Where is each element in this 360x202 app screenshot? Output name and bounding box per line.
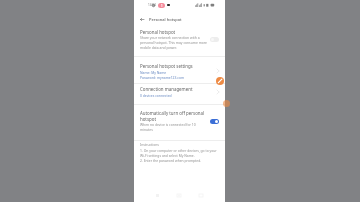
staticText: Instructions [140, 142, 159, 147]
staticText: 1 [161, 4, 163, 8]
staticText: 1. On your computer or other devices, go… [140, 148, 219, 158]
button[interactable]: Toggle off [210, 37, 219, 42]
button[interactable]: Quick action [223, 100, 230, 107]
staticText: Personal hotspot [149, 17, 182, 22]
staticText: 0 devices connected [140, 93, 172, 98]
staticText: Personal hotspot [140, 29, 176, 35]
button[interactable]: Toggle on [210, 119, 219, 124]
button[interactable] [134, 26, 225, 55]
staticText: Connection management [140, 86, 193, 92]
button[interactable]: Back [135, 13, 148, 26]
staticText: 14:52 [148, 3, 156, 7]
staticText: Name: My Name [140, 70, 167, 75]
button[interactable] [134, 104, 225, 139]
staticText: Personal hotspot settings [140, 63, 193, 69]
staticText: Password: myname123.com [140, 75, 185, 80]
button[interactable]: Edit hotspot [216, 77, 224, 85]
button[interactable] [134, 57, 225, 82]
staticText: 2. Enter the password when prompted. [140, 158, 202, 163]
button[interactable] [134, 83, 225, 103]
staticText: Automatically turn off personal hotspot [140, 110, 206, 122]
staticText: When no device is connected for 10 minut… [140, 122, 202, 132]
staticText: Share your network connection with a per… [140, 35, 208, 50]
